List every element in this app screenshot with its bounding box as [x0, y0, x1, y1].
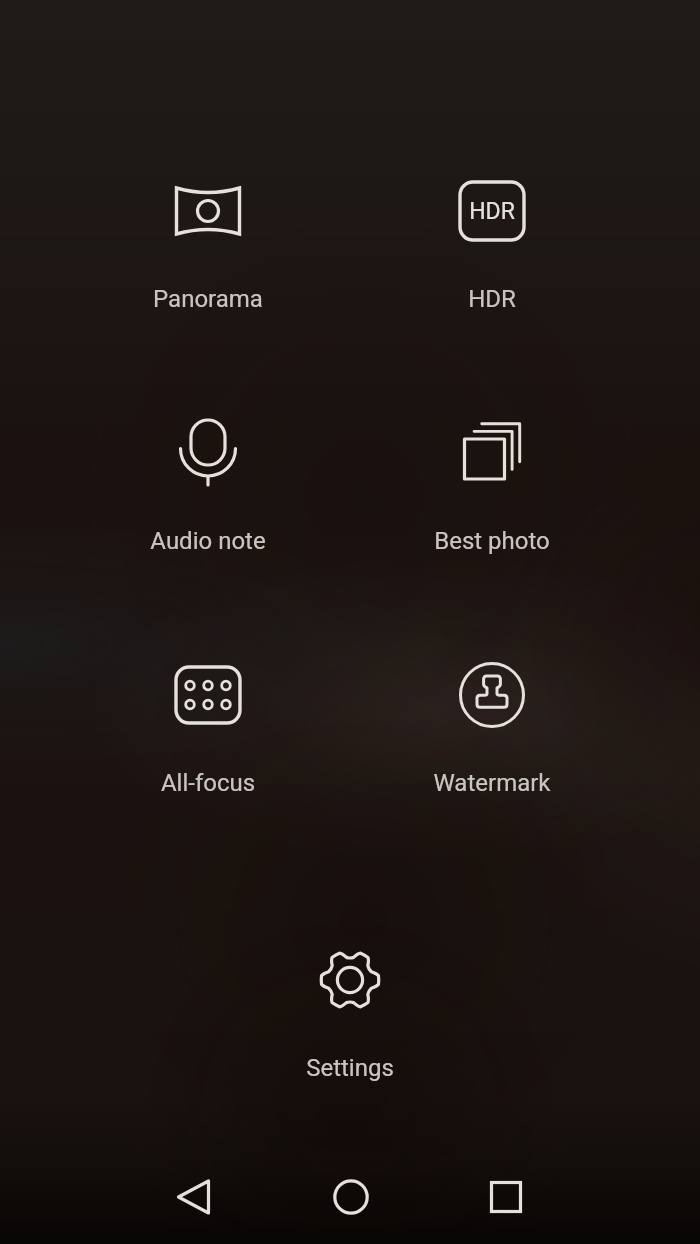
staticText: Panorama: [113, 285, 303, 313]
staticText: Settings: [255, 1054, 445, 1082]
button[interactable]: All-focus: [113, 637, 303, 801]
button[interactable]: HDR: [397, 153, 587, 317]
staticText: All-focus: [113, 769, 303, 797]
button[interactable]: Watermark: [397, 637, 587, 801]
button[interactable]: Back: [139, 1150, 249, 1244]
button[interactable]: Recent apps: [451, 1150, 561, 1244]
staticText: Best photo: [397, 527, 587, 555]
button[interactable]: Settings: [255, 922, 445, 1086]
staticText: HDR: [397, 285, 587, 313]
staticText: Watermark: [397, 769, 587, 797]
staticText: HDR: [432, 198, 552, 225]
staticText: Audio note: [113, 527, 303, 555]
button[interactable]: Best photo: [397, 394, 587, 559]
button[interactable]: Panorama: [113, 153, 303, 317]
button[interactable]: Audio note: [113, 394, 303, 559]
button[interactable]: Home: [296, 1150, 406, 1244]
